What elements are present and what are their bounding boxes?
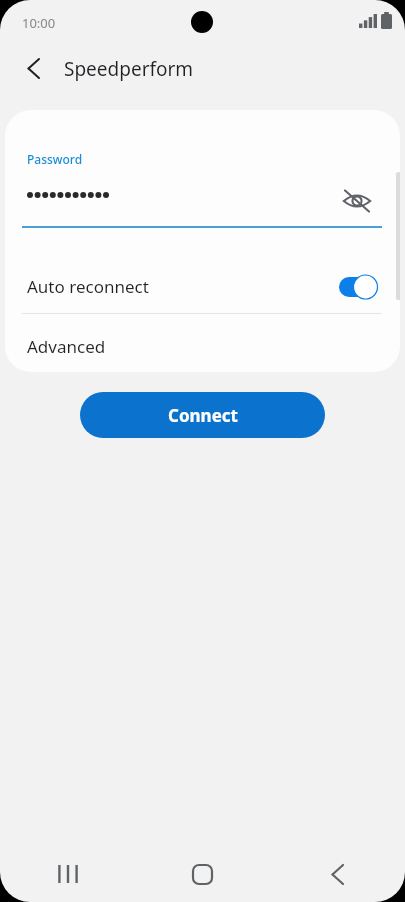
staticText: Password bbox=[27, 151, 83, 167]
button[interactable]: Connect bbox=[80, 392, 325, 438]
button[interactable]: Auto reconnect toggle bbox=[332, 274, 382, 300]
button[interactable]: Back bbox=[270, 846, 405, 902]
staticText: Connect bbox=[168, 404, 238, 427]
button[interactable]: Recent apps bbox=[0, 846, 135, 902]
button[interactable]: Back bbox=[18, 53, 48, 83]
button[interactable]: Show password bbox=[334, 178, 380, 224]
button[interactable]: Advanced bbox=[5, 314, 400, 372]
button[interactable]: Home bbox=[135, 846, 270, 902]
staticText: Speedperform bbox=[64, 56, 194, 82]
button[interactable]: Auto reconnect bbox=[5, 260, 400, 313]
staticText: Advanced bbox=[27, 335, 106, 358]
staticText: Auto reconnect bbox=[27, 275, 149, 298]
staticText: 10:00 bbox=[22, 14, 56, 32]
